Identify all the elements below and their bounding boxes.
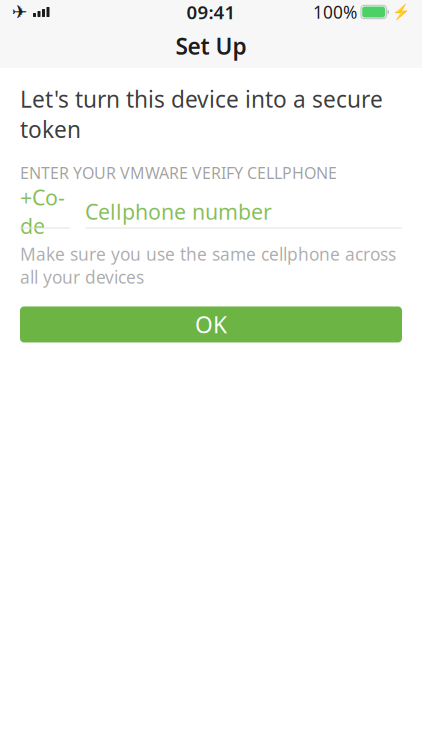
button[interactable]: OK — [20, 306, 402, 342]
staticText: OK — [195, 309, 227, 339]
staticText: ⚡ — [392, 4, 410, 20]
staticText: Cellphone number — [85, 197, 272, 226]
staticText: 09:41 — [186, 0, 235, 24]
staticText: Let's turn this device into a secure tok… — [20, 84, 383, 144]
staticText: Make sure you use the same cellphone acr… — [20, 242, 396, 288]
staticText: ENTER YOUR VMWARE VERIFY CELLPHONE — [20, 162, 337, 183]
staticText: Set Up — [175, 31, 246, 61]
button[interactable]: +Code — [20, 200, 402, 228]
staticText: 100% — [313, 0, 357, 23]
staticText: +Code — [20, 183, 65, 240]
staticText: ✈ — [12, 1, 28, 23]
